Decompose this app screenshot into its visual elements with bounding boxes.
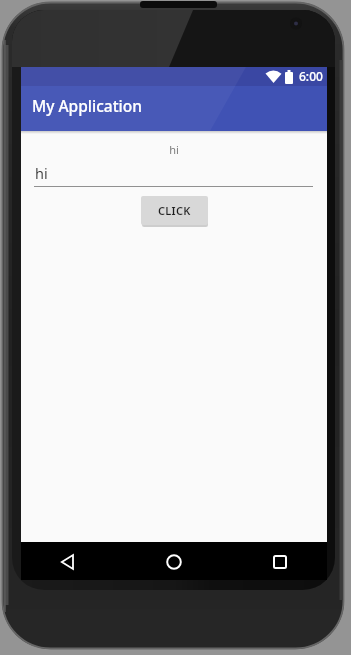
staticText: hi — [21, 142, 327, 157]
button[interactable] — [267, 549, 292, 574]
staticText: hi — [35, 163, 48, 183]
button[interactable]: hi — [34, 158, 313, 187]
button[interactable]: CLICK — [141, 196, 208, 225]
staticText: My Application — [32, 95, 142, 116]
button[interactable] — [55, 549, 80, 574]
staticText: CLICK — [158, 203, 191, 218]
staticText: 6:00 — [299, 68, 323, 84]
button[interactable] — [161, 549, 186, 574]
